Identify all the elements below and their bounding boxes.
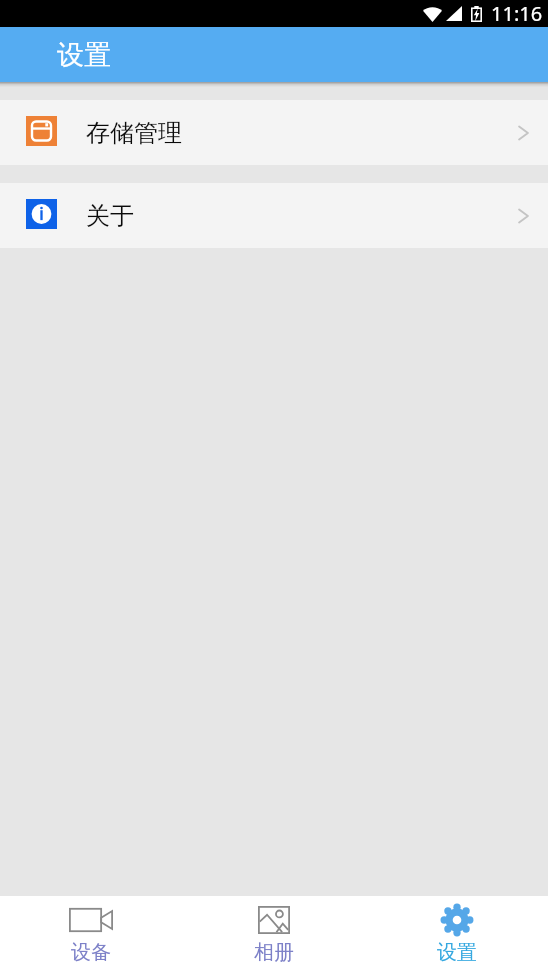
button[interactable]: 存储管理: [0, 100, 548, 165]
staticText: 设置: [437, 940, 477, 965]
button[interactable]: Album: [182, 896, 365, 972]
staticText: 设备: [71, 940, 111, 965]
other: Settings: [440, 904, 474, 936]
staticText: 存储管理: [86, 118, 182, 148]
staticText: 相册: [254, 940, 294, 965]
button[interactable]: Devices: [0, 896, 182, 972]
button[interactable]: Settings: [365, 896, 548, 972]
staticText: 设置: [57, 38, 111, 72]
button[interactable]: 关于: [0, 183, 548, 248]
staticText: 11:16: [491, 0, 543, 27]
other: Album: [258, 906, 290, 934]
other: Devices: [69, 906, 113, 934]
staticText: 关于: [86, 201, 134, 231]
